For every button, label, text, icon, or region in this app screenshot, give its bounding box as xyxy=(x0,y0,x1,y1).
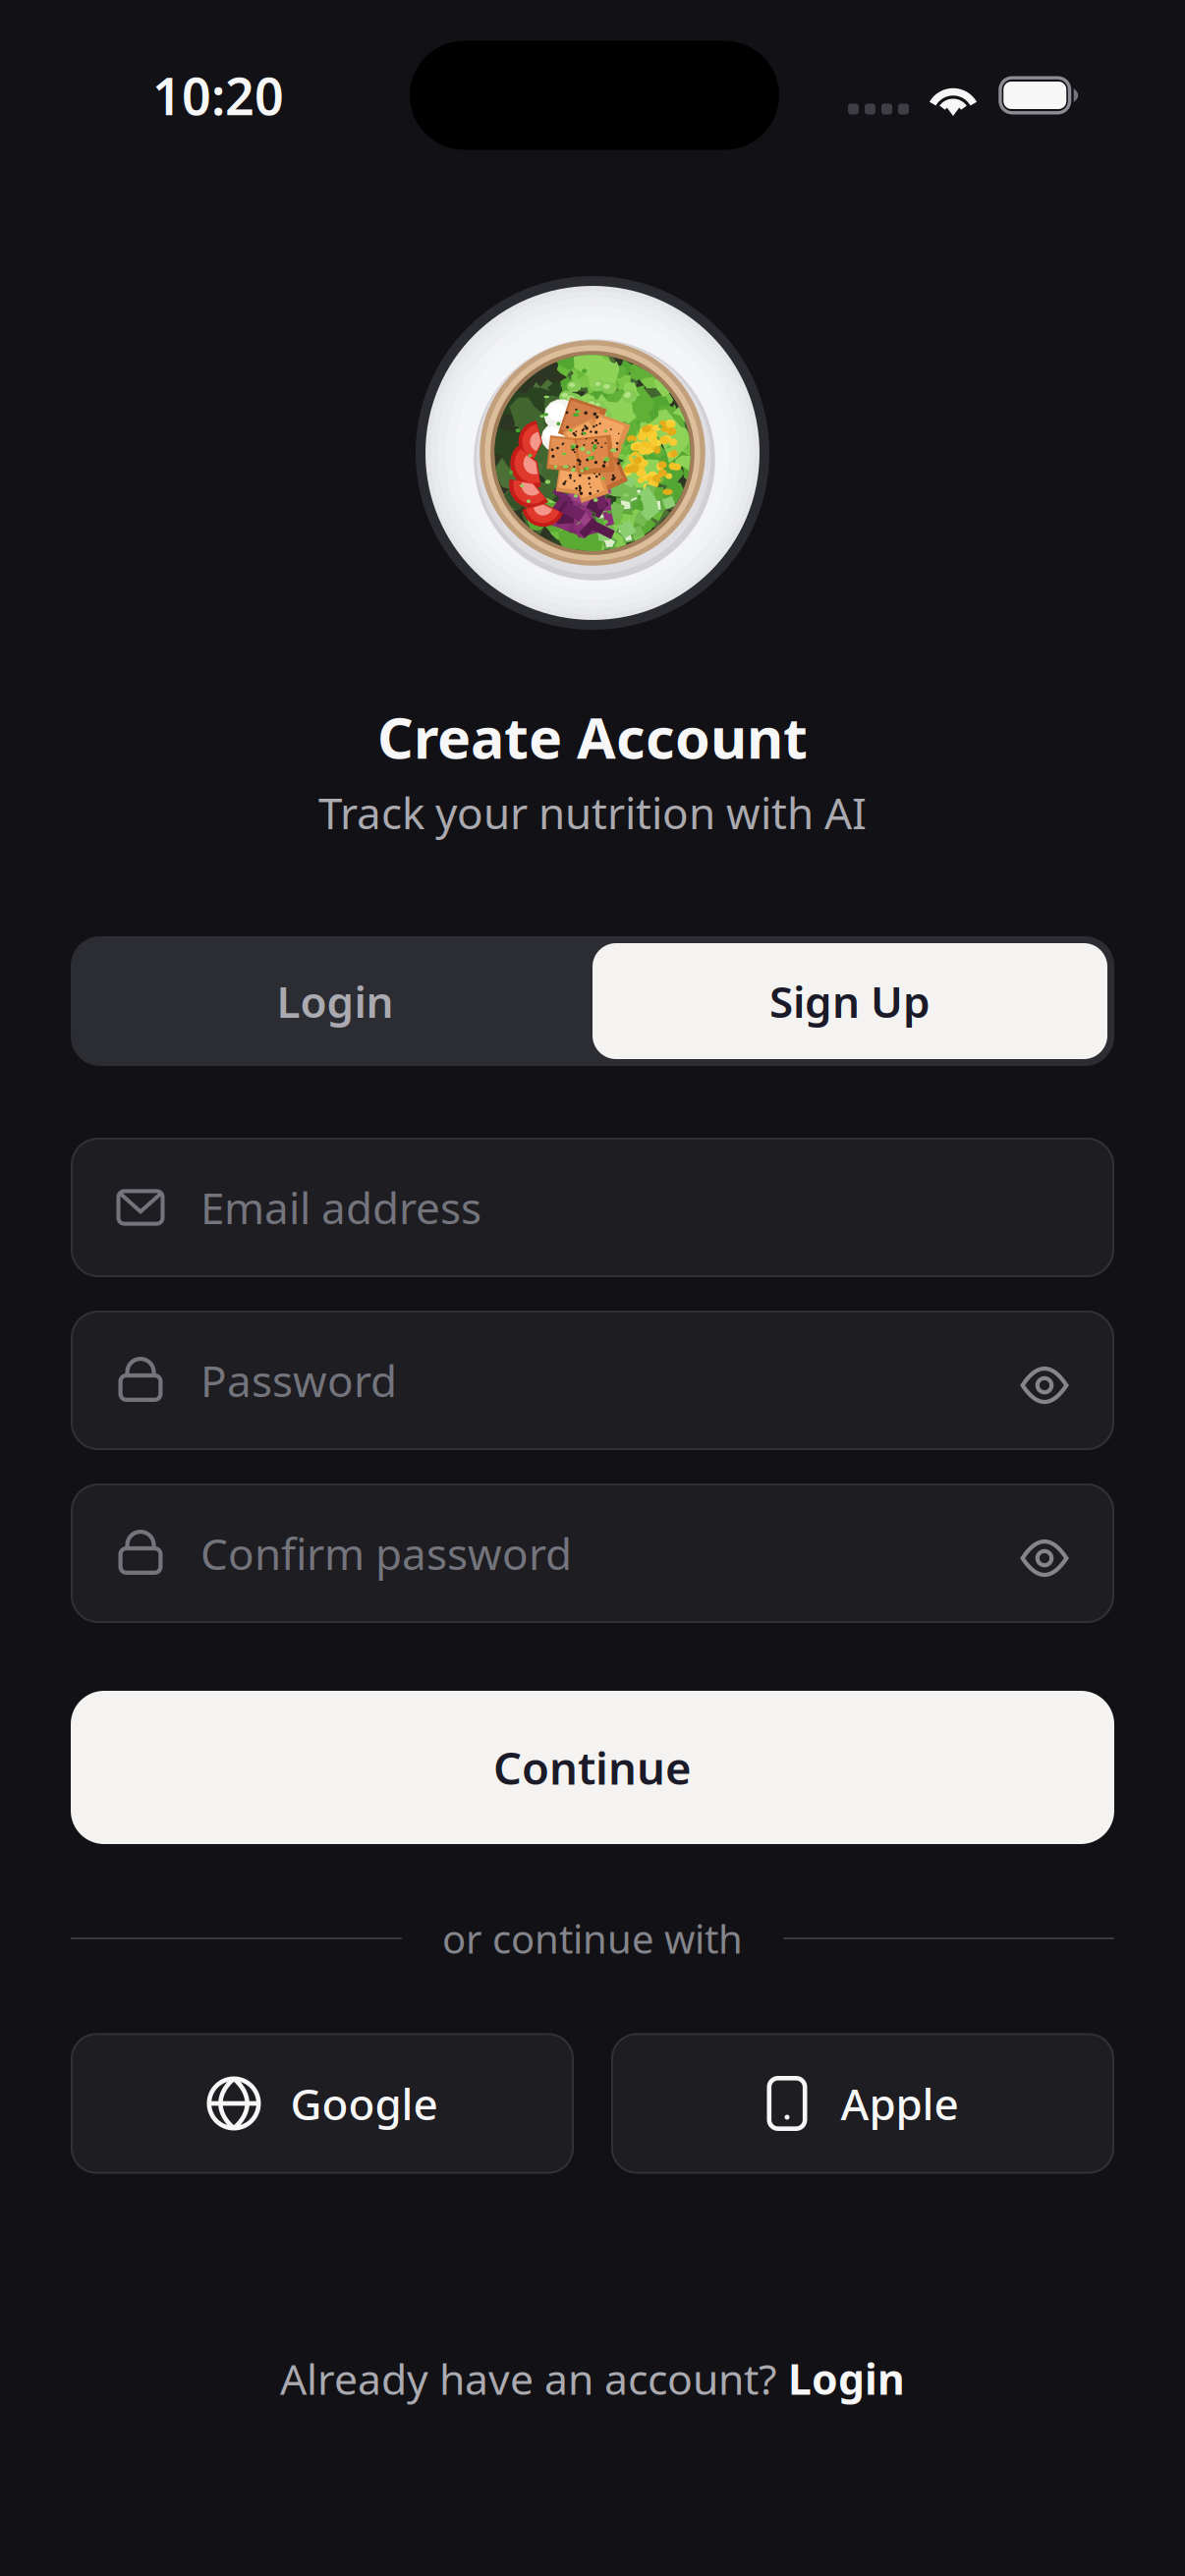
button[interactable]: Password xyxy=(71,1311,1114,1450)
staticText: Continue xyxy=(493,1738,692,1797)
button[interactable]: Already have an account? xyxy=(280,2351,905,2406)
button[interactable]: Sign Up xyxy=(592,943,1107,1059)
button[interactable]: Show password xyxy=(999,1513,1090,1603)
staticText: Sign Up xyxy=(769,972,931,1030)
button[interactable]: Confirm password xyxy=(71,1484,1114,1623)
staticText: or continue with xyxy=(442,1912,743,1964)
button[interactable]: Apple xyxy=(611,2033,1114,2174)
button[interactable]: Login xyxy=(78,943,592,1059)
staticText: Login xyxy=(788,2351,905,2406)
button[interactable]: Email address xyxy=(71,1138,1114,1277)
staticText: Already have an account? xyxy=(280,2351,788,2406)
staticText: Create Account xyxy=(377,699,808,774)
staticText: Password xyxy=(200,1352,397,1409)
staticText: 10:20 xyxy=(152,61,284,129)
staticText: Apple xyxy=(841,2075,959,2132)
button[interactable]: Show password xyxy=(999,1340,1090,1430)
staticText: Google xyxy=(290,2075,438,2132)
button[interactable]: Continue xyxy=(71,1691,1114,1844)
staticText: Email address xyxy=(200,1179,481,1236)
staticText: Login xyxy=(277,972,394,1030)
staticText: Track your nutrition with AI xyxy=(318,784,867,841)
staticText: Confirm password xyxy=(200,1525,572,1582)
button[interactable]: Google xyxy=(71,2033,574,2174)
